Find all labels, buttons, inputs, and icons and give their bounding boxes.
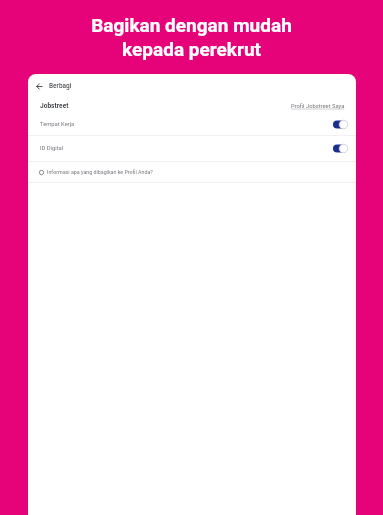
other: Tempat Kerja aktif: [333, 119, 348, 130]
button[interactable]: Tempat Kerja: [40, 114, 348, 135]
button[interactable]: Informasi apa yang dibagikan ke Profil A…: [39, 162, 356, 182]
button[interactable]: Profil Jobstreet Saya: [291, 103, 345, 110]
other: ID Digital aktif: [333, 143, 348, 154]
staticText: Informasi apa yang dibagikan ke Profil A…: [47, 169, 153, 175]
staticText: Bagikan dengan mudah kepada perekrut: [91, 14, 292, 61]
staticText: Jobstreet: [40, 102, 69, 110]
staticText: Berbagi: [49, 82, 72, 90]
staticText: Tempat Kerja: [40, 121, 75, 128]
button[interactable]: ID Digital: [40, 136, 348, 161]
button[interactable]: Kembali: [28, 74, 52, 98]
staticText: ID Digital: [40, 145, 64, 152]
staticText: Profil Jobstreet Saya: [291, 103, 345, 110]
